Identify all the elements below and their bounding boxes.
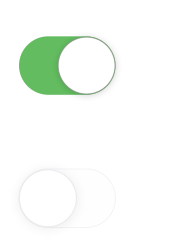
button[interactable]: Switch, off bbox=[19, 169, 115, 227]
button[interactable]: Switch, on bbox=[19, 36, 115, 95]
